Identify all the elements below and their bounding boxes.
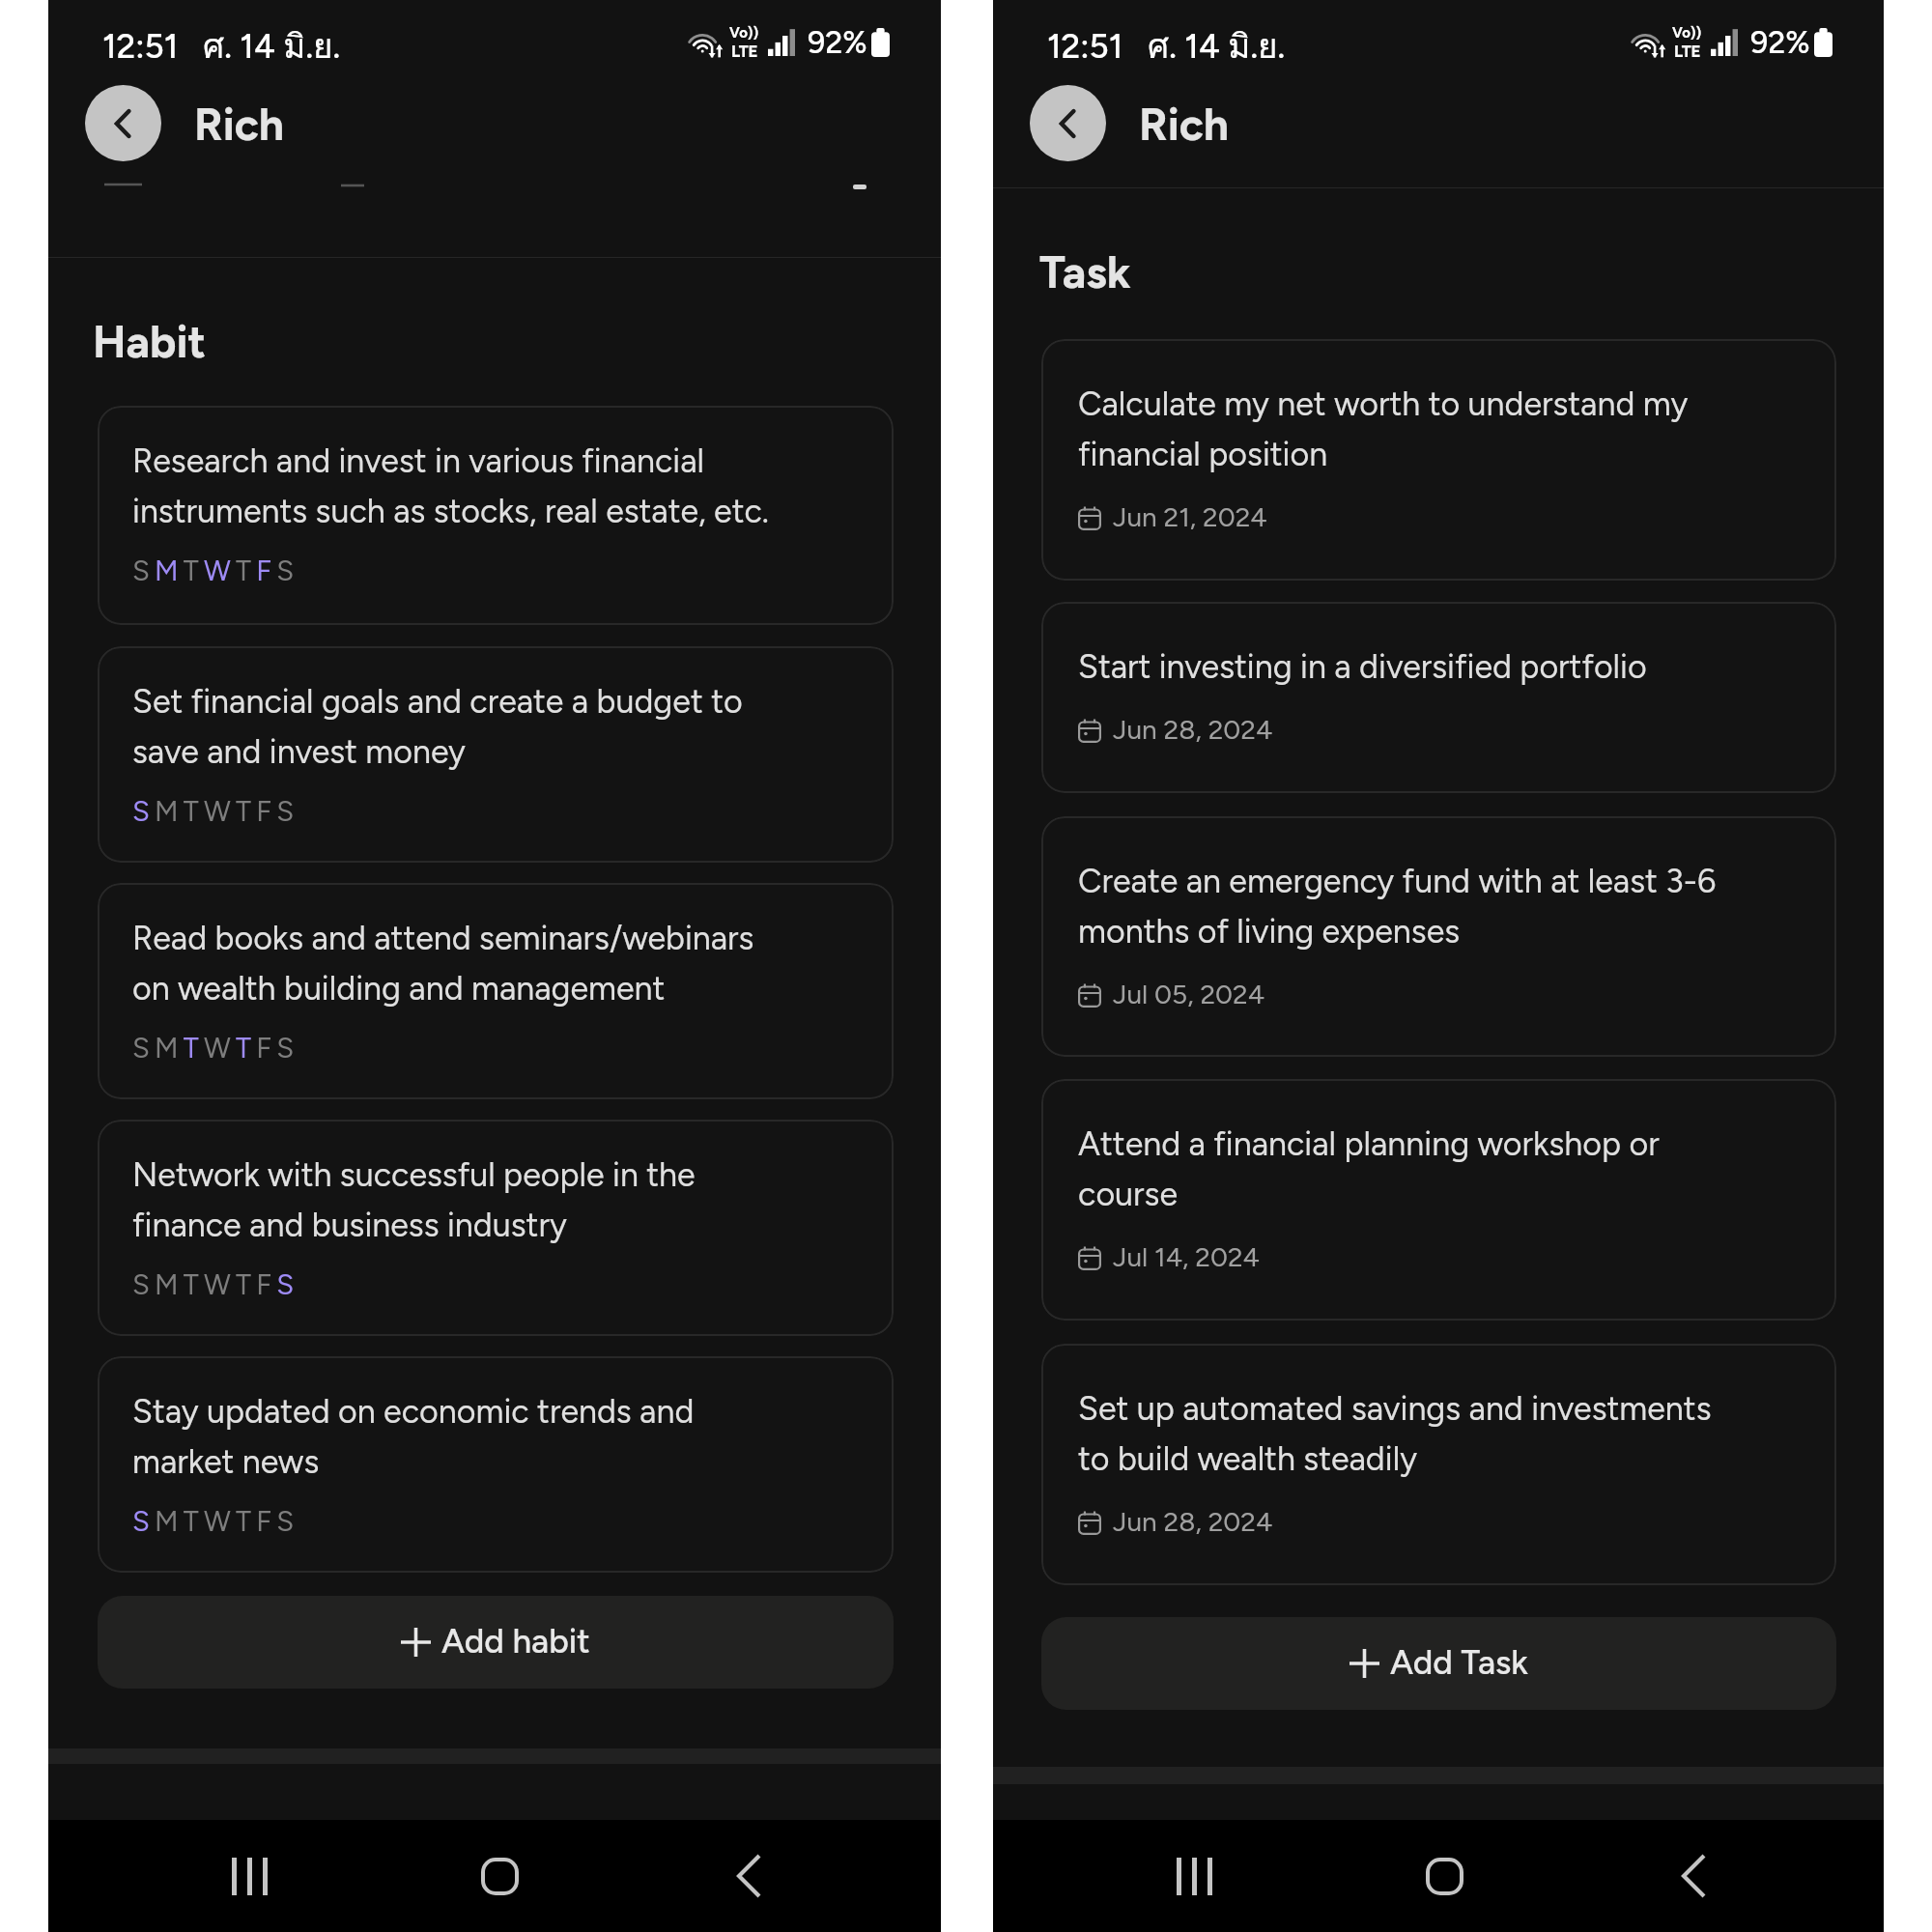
staticText: Vo))	[729, 24, 759, 42]
staticText: Network with successful people in the fi…	[132, 1155, 778, 1245]
button[interactable]: Attend a financial planning workshop or …	[1041, 1079, 1836, 1321]
button[interactable]: Set financial goals and create a budget …	[98, 646, 894, 863]
staticText: Jul 05, 2024	[1113, 978, 1265, 1010]
button[interactable]: Home	[434, 1820, 565, 1932]
staticText: Rich	[1139, 98, 1230, 151]
staticText: Jul 14, 2024	[1113, 1240, 1260, 1273]
button[interactable]: Read books and attend seminars/webinars …	[98, 883, 894, 1099]
button[interactable]: Add habit	[98, 1596, 894, 1689]
button[interactable]: Recents	[1128, 1820, 1260, 1932]
staticText: Start investing in a diversified portfol…	[1078, 647, 1647, 687]
staticText: LTE	[1674, 42, 1701, 61]
button[interactable]: Research and invest in various financial…	[98, 406, 894, 625]
staticText: 92%	[808, 24, 867, 61]
staticText: Stay updated on economic trends and mark…	[132, 1392, 778, 1482]
staticText: S M T W T F S	[132, 794, 293, 828]
button[interactable]: Home	[1378, 1820, 1510, 1932]
button[interactable]: Start investing in a diversified portfol…	[1041, 602, 1836, 793]
staticText: 12:51 ศ. 14 มิ.ย.	[1047, 19, 1286, 73]
staticText: 92%	[1750, 24, 1810, 61]
staticText: Rich	[194, 98, 285, 151]
staticText: 12:51 ศ. 14 มิ.ย.	[102, 19, 341, 73]
staticText: S M T W T F S	[132, 554, 293, 587]
button[interactable]: Stay updated on economic trends and mark…	[98, 1356, 894, 1573]
staticText: S M T W T F S	[132, 1031, 293, 1065]
button[interactable]: Network with successful people in the fi…	[98, 1120, 894, 1336]
button[interactable]: Back	[1628, 1820, 1759, 1932]
staticText: Jun 28, 2024	[1113, 1505, 1273, 1538]
button[interactable]: Back	[1030, 85, 1106, 161]
staticText: Read books and attend seminars/webinars …	[132, 919, 778, 1009]
staticText: Set financial goals and create a budget …	[132, 682, 778, 772]
staticText: Set up automated savings and investments…	[1078, 1389, 1728, 1479]
staticText: Vo))	[1672, 24, 1702, 42]
staticText: Habit	[93, 315, 206, 368]
staticText: LTE	[731, 42, 758, 61]
button[interactable]: Add Task	[1041, 1617, 1836, 1710]
button[interactable]: Back	[85, 85, 161, 161]
button[interactable]: Set up automated savings and investments…	[1041, 1344, 1836, 1585]
staticText: Add habit	[441, 1621, 590, 1662]
staticText: Task	[1039, 245, 1131, 298]
staticText: Attend a financial planning workshop or …	[1078, 1124, 1728, 1214]
staticText: Jun 28, 2024	[1113, 713, 1273, 746]
button[interactable]: Recents	[184, 1820, 315, 1932]
staticText: Research and invest in various financial…	[132, 441, 778, 531]
staticText: Create an emergency fund with at least 3…	[1078, 862, 1728, 952]
button[interactable]: Create an emergency fund with at least 3…	[1041, 816, 1836, 1057]
staticText: S M T W T F S	[132, 1504, 293, 1538]
staticText: Add Task	[1390, 1642, 1528, 1683]
button[interactable]: Calculate my net worth to understand my …	[1041, 339, 1836, 581]
staticText: Jun 21, 2024	[1113, 500, 1267, 533]
button[interactable]: Back	[683, 1820, 814, 1932]
staticText: S M T W T F S	[132, 1267, 293, 1301]
staticText: Calculate my net worth to understand my …	[1078, 384, 1728, 474]
